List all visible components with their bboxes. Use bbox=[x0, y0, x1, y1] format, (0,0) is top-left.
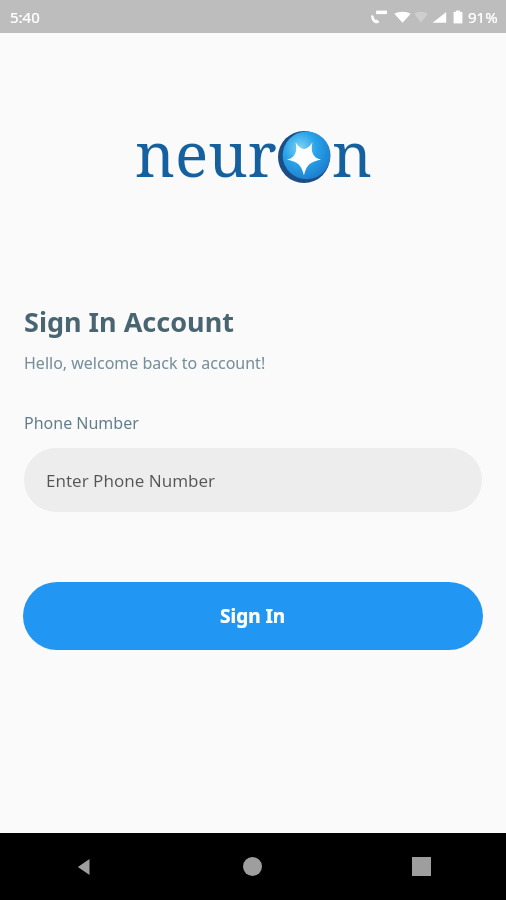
button[interactable]: Enter Phone Number bbox=[24, 448, 482, 512]
staticText: Sign In bbox=[220, 603, 286, 629]
button[interactable]: Recent apps bbox=[337, 833, 506, 900]
button[interactable]: Home bbox=[168, 833, 337, 900]
staticText: Sign In Account bbox=[24, 303, 234, 340]
button[interactable]: Sign In bbox=[23, 582, 483, 650]
staticText: n bbox=[332, 111, 372, 191]
button[interactable]: Back bbox=[0, 833, 168, 900]
staticText: 5:40 bbox=[10, 7, 40, 27]
staticText: 91% bbox=[468, 7, 498, 27]
staticText: neur bbox=[135, 111, 277, 191]
staticText: Enter Phone Number bbox=[46, 469, 216, 492]
staticText: Hello, welcome back to account! bbox=[24, 352, 266, 374]
staticText: Phone Number bbox=[24, 412, 139, 434]
